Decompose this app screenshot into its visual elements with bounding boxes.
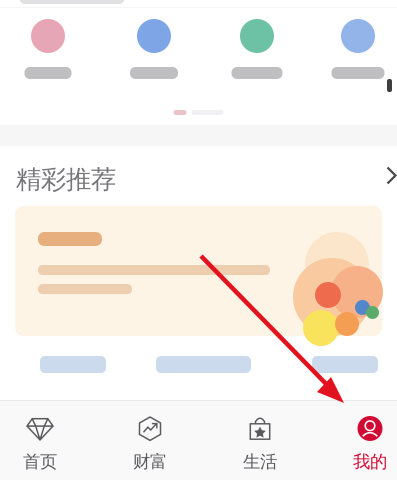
button[interactable] <box>0 206 367 336</box>
button[interactable]: 我的 <box>330 416 397 472</box>
staticText: 精彩推荐 <box>16 164 116 195</box>
button[interactable] <box>109 19 199 79</box>
button[interactable]: 精彩推荐 <box>0 154 397 198</box>
button[interactable]: 财富 <box>110 416 190 472</box>
staticText: 我的 <box>353 451 387 472</box>
button[interactable]: 首页 <box>0 416 80 472</box>
staticText: 首页 <box>23 451 57 472</box>
button[interactable] <box>212 19 302 79</box>
button[interactable]: Side tab <box>387 79 392 92</box>
button[interactable] <box>156 356 251 373</box>
button[interactable] <box>3 19 93 79</box>
button[interactable] <box>313 19 397 79</box>
button[interactable] <box>40 356 106 373</box>
button[interactable]: 生活 <box>220 416 300 472</box>
staticText: 财富 <box>133 451 167 472</box>
button[interactable] <box>312 356 378 373</box>
staticText: 生活 <box>243 451 277 472</box>
